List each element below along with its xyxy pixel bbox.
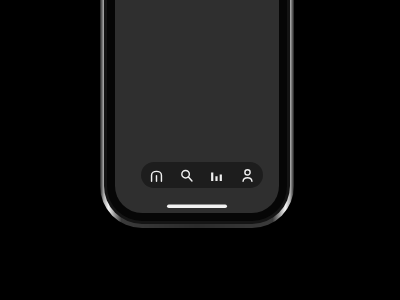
button[interactable]: Statistics — [201, 162, 232, 188]
button[interactable]: Profile — [232, 162, 263, 188]
button[interactable]: Home — [141, 162, 171, 188]
button[interactable]: Search — [171, 162, 201, 188]
